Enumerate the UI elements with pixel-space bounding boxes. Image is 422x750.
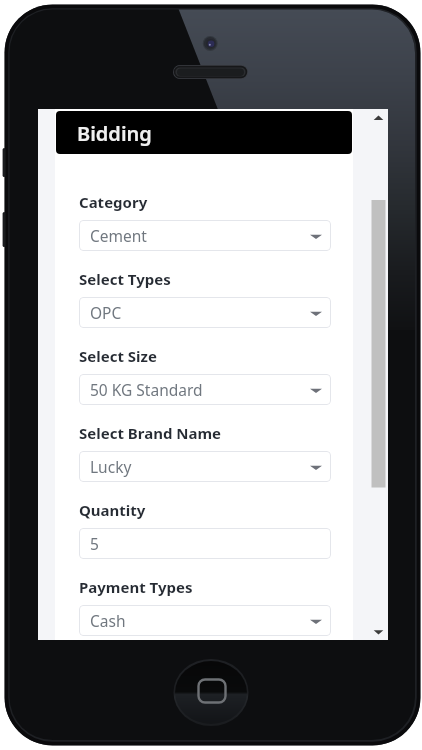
other: Open Payment Types dropdown — [310, 615, 322, 627]
other: Scrollbar — [353, 109, 388, 640]
staticText: Select Brand Name — [79, 423, 222, 443]
button[interactable]: Bidding — [56, 111, 352, 154]
button[interactable]: OPC — [79, 297, 331, 328]
other: Open Select Brand Name dropdown — [310, 461, 322, 473]
staticText: Select Size — [79, 346, 157, 366]
staticText: Category — [79, 192, 148, 212]
staticText: 5 — [90, 533, 99, 554]
staticText: Payment Types — [79, 577, 193, 597]
staticText: Cash — [90, 610, 126, 631]
other: Open Category dropdown — [310, 230, 322, 242]
staticText: Select Types — [79, 269, 171, 289]
staticText: OPC — [90, 302, 122, 323]
staticText: Quantity — [79, 500, 146, 520]
staticText: Lucky — [90, 456, 132, 477]
button[interactable]: 50 KG Standard — [79, 374, 331, 405]
button[interactable]: Lucky — [79, 451, 331, 482]
other: Open Select Size dropdown — [310, 384, 322, 396]
staticText: Cement — [90, 225, 147, 246]
other: Open Select Types dropdown — [310, 307, 322, 319]
staticText: 50 KG Standard — [90, 379, 203, 400]
button[interactable]: Cement — [79, 220, 331, 251]
button[interactable]: 5 — [79, 528, 331, 559]
staticText: Bidding — [77, 120, 152, 147]
button[interactable]: Cash — [79, 605, 331, 636]
